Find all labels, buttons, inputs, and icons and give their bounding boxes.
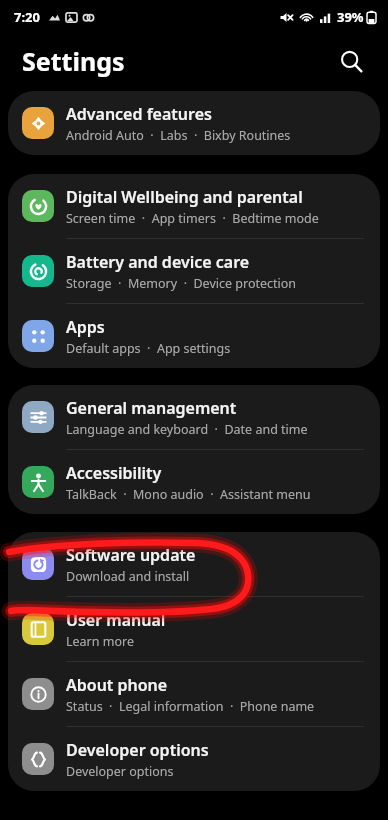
button[interactable]: Developer options xyxy=(8,727,380,791)
button[interactable]: Digital Wellbeing and parental controls xyxy=(8,174,380,238)
staticText: Android Auto · Labs · Bixby Routines xyxy=(66,127,291,144)
staticText: 7:20 xyxy=(14,8,40,26)
staticText: Default apps · App settings xyxy=(66,340,231,357)
staticText: Storage · Memory · Device protection xyxy=(66,275,297,292)
staticText: Developer options xyxy=(66,763,174,780)
staticText: Battery and device care xyxy=(66,251,250,273)
staticText: User manual xyxy=(66,609,166,631)
staticText: Settings xyxy=(22,44,125,78)
staticText: Learn more xyxy=(66,633,134,650)
staticText: Digital Wellbeing and parental controls xyxy=(66,186,368,208)
staticText: Apps xyxy=(66,316,105,338)
staticText: Developer options xyxy=(66,739,209,761)
button[interactable]: Apps xyxy=(8,304,380,368)
staticText: TalkBack · Mono audio · Assistant menu xyxy=(66,486,311,503)
staticText: 39% xyxy=(337,8,364,26)
button[interactable]: Accessibility xyxy=(8,450,380,514)
staticText: Advanced features xyxy=(66,103,212,125)
staticText: Accessibility xyxy=(66,462,162,484)
button[interactable]: Software update xyxy=(8,532,380,596)
button[interactable]: Battery and device care xyxy=(8,239,380,303)
staticText: Screen time · App timers · Bedtime mode xyxy=(66,210,319,227)
button[interactable]: General management xyxy=(8,385,380,449)
staticText: Status · Legal information · Phone name xyxy=(66,698,315,715)
button[interactable]: Advanced features xyxy=(8,91,380,155)
button[interactable]: About phone xyxy=(8,662,380,726)
staticText: Software update xyxy=(66,544,196,566)
button[interactable]: Search xyxy=(331,41,371,81)
staticText: Download and install xyxy=(66,568,190,585)
staticText: Language and keyboard · Date and time xyxy=(66,421,308,438)
staticText: General management xyxy=(66,397,237,419)
button[interactable]: User manual xyxy=(8,597,380,661)
staticText: About phone xyxy=(66,674,168,696)
